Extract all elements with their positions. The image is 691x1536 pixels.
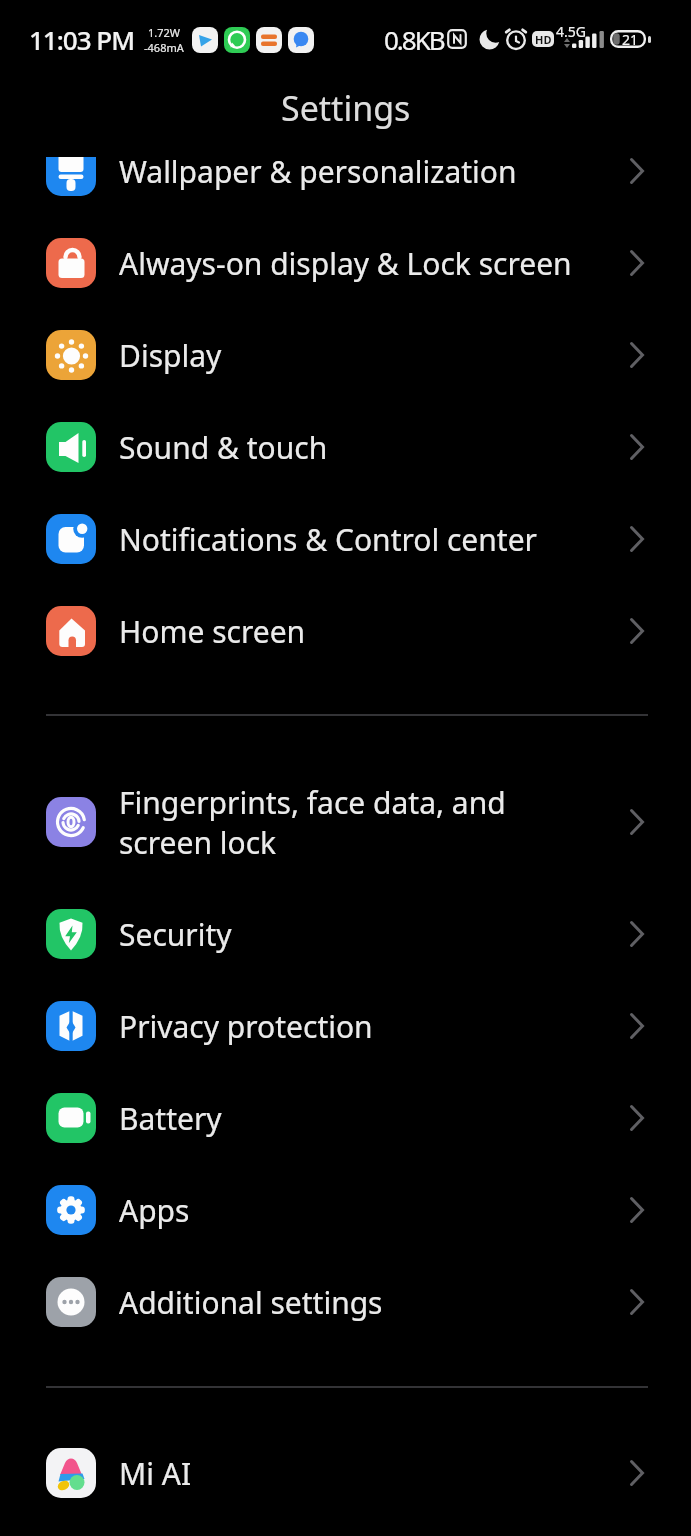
staticText: HD bbox=[535, 32, 552, 47]
button[interactable]: Battery bbox=[0, 1072, 691, 1164]
button[interactable]: Display bbox=[0, 309, 691, 401]
staticText: Wallpaper & personalization bbox=[119, 151, 630, 192]
staticText: -468mA bbox=[144, 40, 184, 55]
staticText: Apps bbox=[119, 1190, 630, 1231]
button[interactable]: Always-on display & Lock screen bbox=[0, 217, 691, 309]
staticText: 21 bbox=[622, 30, 639, 48]
staticText: Home screen bbox=[119, 611, 630, 652]
staticText: Mi AI bbox=[119, 1453, 630, 1494]
staticText: Settings bbox=[281, 85, 411, 131]
staticText: Fingerprints, face data, and screen lock bbox=[119, 782, 630, 863]
staticText: Notifications & Control center bbox=[119, 519, 630, 560]
staticText: Battery bbox=[119, 1098, 630, 1139]
button[interactable]: Privacy protection bbox=[0, 980, 691, 1072]
staticText: 4.5G bbox=[556, 22, 586, 41]
button[interactable]: Notifications & Control center bbox=[0, 493, 691, 585]
button[interactable]: Sound & touch bbox=[0, 401, 691, 493]
staticText: Sound & touch bbox=[119, 427, 630, 468]
button[interactable]: Wallpaper & personalization bbox=[0, 125, 691, 217]
staticText: Display bbox=[119, 335, 630, 376]
staticText: 1.72W bbox=[148, 25, 181, 40]
button[interactable]: Apps bbox=[0, 1164, 691, 1256]
staticText: Privacy protection bbox=[119, 1006, 630, 1047]
button[interactable]: Home screen bbox=[0, 585, 691, 677]
button[interactable]: Additional settings bbox=[0, 1256, 691, 1348]
staticText: 11:03 PM bbox=[29, 22, 135, 57]
button[interactable]: Fingerprints, face data, and screen lock bbox=[0, 766, 691, 878]
button[interactable]: Mi AI bbox=[0, 1427, 691, 1519]
staticText: 0.8KB bbox=[384, 22, 444, 57]
staticText: Additional settings bbox=[119, 1282, 630, 1323]
staticText: Security bbox=[119, 914, 630, 955]
button[interactable]: Security bbox=[0, 888, 691, 980]
staticText: Always-on display & Lock screen bbox=[119, 243, 630, 284]
